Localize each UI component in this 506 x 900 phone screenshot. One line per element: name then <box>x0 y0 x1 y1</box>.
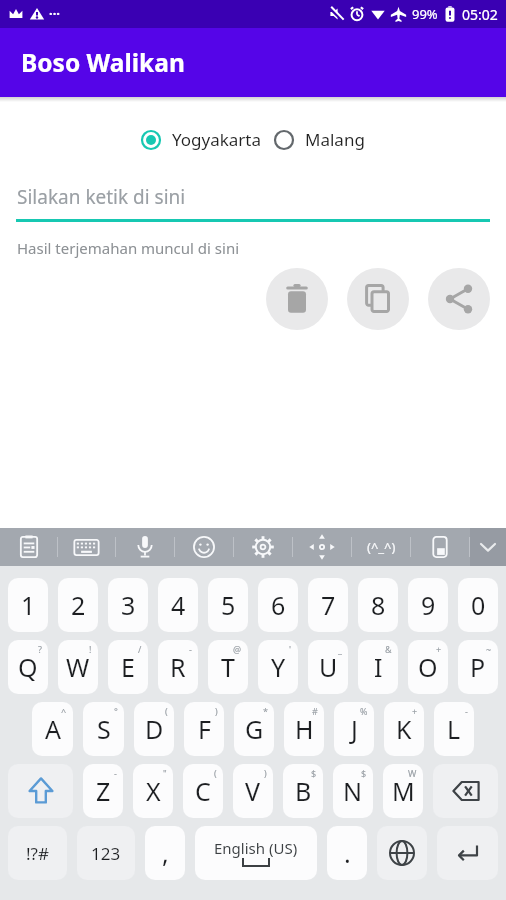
button[interactable] <box>428 268 490 330</box>
staticText: I <box>374 650 383 684</box>
staticText: A <box>45 712 61 746</box>
button[interactable]: 6 <box>258 578 298 632</box>
staticText: L <box>447 712 461 746</box>
button[interactable]: 5 <box>208 578 248 632</box>
button[interactable]: G <box>234 702 274 756</box>
button[interactable] <box>437 826 498 880</box>
staticText: + <box>436 643 442 655</box>
staticText: + <box>412 705 418 717</box>
staticText: Hasil terjemahan muncul di sini <box>17 238 240 258</box>
button[interactable]: . <box>327 826 367 880</box>
button[interactable]: 0 <box>458 578 498 632</box>
staticText: @ <box>233 643 242 655</box>
staticText: ( <box>214 767 217 779</box>
button[interactable] <box>8 764 73 818</box>
staticText: T <box>221 650 235 684</box>
button[interactable]: 1 <box>8 578 48 632</box>
button[interactable]: M <box>383 764 423 818</box>
button[interactable] <box>58 528 115 566</box>
button[interactable]: A <box>32 702 73 756</box>
button[interactable]: Q <box>8 640 48 694</box>
button[interactable] <box>377 826 427 880</box>
staticText: ... <box>49 1 60 19</box>
staticText: !?# <box>26 842 49 865</box>
staticText: S <box>97 712 111 746</box>
button[interactable]: T <box>208 640 248 694</box>
button[interactable]: F <box>184 702 224 756</box>
button[interactable]: W <box>58 640 98 694</box>
button[interactable] <box>433 764 498 818</box>
staticText: Y <box>271 650 286 684</box>
staticText: W <box>408 767 417 779</box>
button[interactable]: , <box>145 826 185 880</box>
button[interactable]: 2 <box>58 578 98 632</box>
staticText: G <box>245 712 264 746</box>
staticText: # <box>312 705 318 717</box>
button[interactable]: Yogyakarta <box>141 128 262 151</box>
staticText: 123 <box>91 842 121 865</box>
button[interactable]: E <box>108 640 148 694</box>
button[interactable]: D <box>134 702 174 756</box>
button[interactable]: 123 <box>77 826 135 880</box>
button[interactable] <box>0 528 57 566</box>
button[interactable]: L <box>434 702 474 756</box>
staticText: 5 <box>221 588 236 622</box>
button[interactable]: H <box>284 702 324 756</box>
button[interactable]: 4 <box>158 578 198 632</box>
button[interactable]: 7 <box>308 578 348 632</box>
button[interactable] <box>266 268 328 330</box>
button[interactable]: U <box>308 640 348 694</box>
staticText: 3 <box>121 588 136 622</box>
button[interactable]: Y <box>258 640 298 694</box>
button[interactable]: Z <box>83 764 123 818</box>
button[interactable]: N <box>333 764 373 818</box>
staticText: P <box>470 650 486 684</box>
button[interactable] <box>470 528 506 566</box>
staticText: J <box>351 712 358 746</box>
staticText: 4 <box>171 588 186 622</box>
button[interactable]: C <box>183 764 223 818</box>
button[interactable]: English (US) <box>195 826 317 880</box>
button[interactable]: V <box>233 764 273 818</box>
staticText: . <box>344 836 351 870</box>
button[interactable]: I <box>358 640 398 694</box>
staticText: ) <box>215 705 218 717</box>
button[interactable] <box>175 528 233 566</box>
staticText: ^ <box>61 705 67 717</box>
staticText: Z <box>96 774 111 808</box>
button[interactable] <box>347 268 409 330</box>
button[interactable]: Malang <box>274 128 365 151</box>
staticText: C <box>195 774 211 808</box>
staticText: U <box>319 650 338 684</box>
staticText: ~ <box>486 643 492 655</box>
button[interactable]: P <box>458 640 498 694</box>
staticText: 0 <box>471 588 486 622</box>
button[interactable]: J <box>334 702 374 756</box>
button[interactable]: X <box>133 764 173 818</box>
button[interactable] <box>116 528 174 566</box>
button[interactable]: O <box>408 640 448 694</box>
staticText: $ <box>311 767 317 779</box>
button[interactable] <box>234 528 292 566</box>
button[interactable] <box>293 528 351 566</box>
staticText: Q <box>18 650 38 684</box>
staticText: B <box>295 774 312 808</box>
button[interactable]: B <box>283 764 323 818</box>
button[interactable]: 8 <box>358 578 398 632</box>
button[interactable]: S <box>83 702 124 756</box>
button[interactable] <box>411 528 469 566</box>
button[interactable]: K <box>384 702 424 756</box>
staticText: _ <box>338 643 342 655</box>
staticText: Boso Walikan <box>21 46 185 79</box>
button[interactable]: (^_^) <box>352 528 410 566</box>
button[interactable]: R <box>158 640 198 694</box>
staticText: Yogyakarta <box>172 128 262 151</box>
staticText: N <box>343 774 363 808</box>
staticText: 6 <box>271 588 286 622</box>
button[interactable]: 3 <box>108 578 148 632</box>
staticText: 7 <box>321 588 336 622</box>
button[interactable]: !?# <box>8 826 67 880</box>
staticText: , <box>162 836 169 870</box>
staticText: ) <box>264 767 267 779</box>
button[interactable]: 9 <box>408 578 448 632</box>
